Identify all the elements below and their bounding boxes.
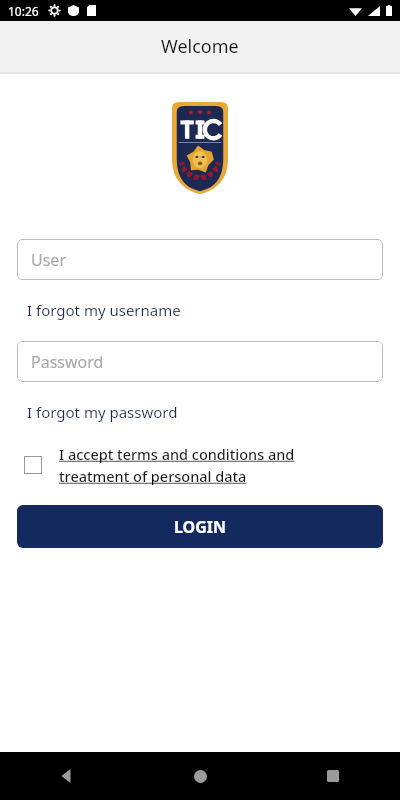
button[interactable]: LOGIN [17,505,383,548]
staticText: I forgot my username [27,300,181,320]
staticText: I accept terms and conditions and [59,444,295,464]
staticText: Welcome [161,34,239,59]
staticText: LOGIN [174,516,227,538]
button[interactable]: Password [17,341,383,382]
button[interactable]: Accept terms checkbox [24,444,383,486]
button[interactable]: Home [180,756,220,796]
other: Accept terms checkbox [24,456,42,474]
button[interactable]: Recents [313,756,353,796]
staticText: 10:26 [8,3,39,19]
button[interactable]: Back [47,756,87,796]
button[interactable]: User [17,239,383,280]
button[interactable]: I forgot my password [27,402,178,422]
staticText: treatment of personal data [59,466,247,486]
staticText: Password [31,351,104,373]
staticText: User [31,249,66,271]
staticText: I forgot my password [27,402,178,422]
button[interactable]: I forgot my username [27,300,181,320]
